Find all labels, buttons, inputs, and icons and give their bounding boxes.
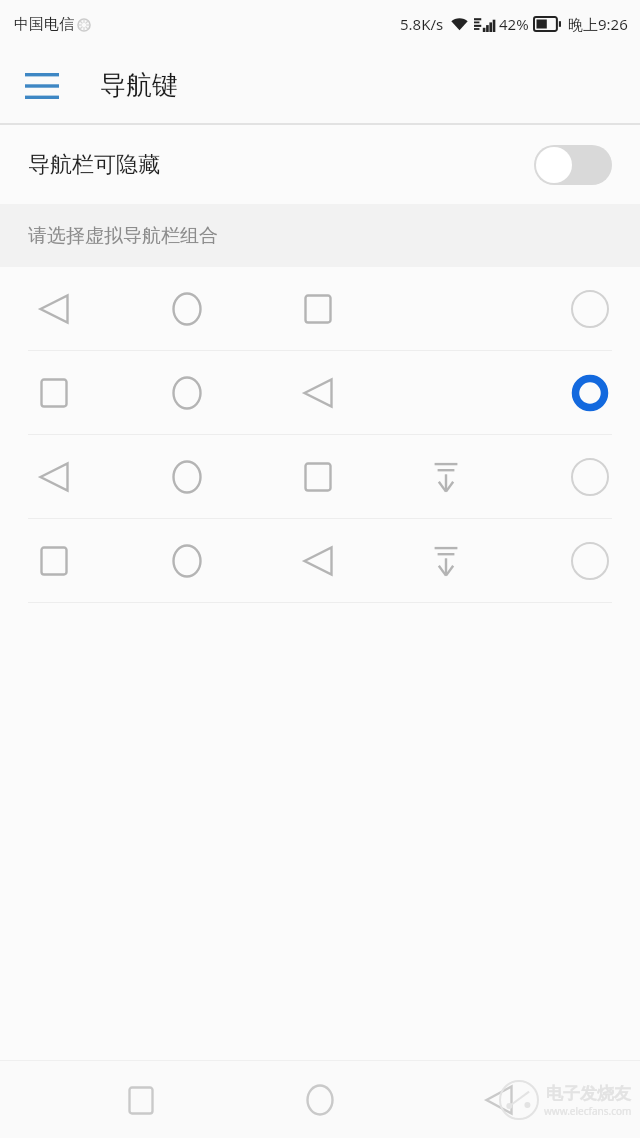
staticText: 请选择虚拟导航栏组合 [28,224,218,248]
staticText: www.elecfans.com [544,1104,632,1118]
button[interactable]: Navigation bar layout option [0,351,640,434]
button[interactable]: Navigation bar layout option [0,519,640,602]
staticText: 晚上9:26 [568,14,628,34]
staticText: 中国电信 [14,15,74,34]
staticText: 42% [499,14,529,34]
staticText: 5.8K/s [400,14,444,34]
button[interactable]: 导航栏可隐藏 [0,125,640,204]
button[interactable]: Navigation bar layout option [0,435,640,518]
staticText: 导航栏可隐藏 [28,151,160,179]
staticText: 导航键 [100,69,178,102]
button[interactable]: Home [282,1062,358,1138]
button[interactable]: Recent apps [103,1062,179,1138]
button[interactable]: Menu [14,58,70,114]
button[interactable]: Navigation bar layout option [0,267,640,350]
button[interactable]: Back [461,1062,537,1138]
staticText: 电子发烧友 [546,1083,631,1104]
